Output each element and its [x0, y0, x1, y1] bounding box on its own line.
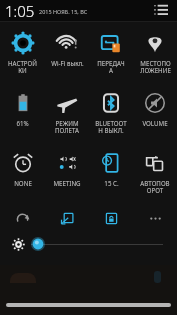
button[interactable]: Data transfer [89, 24, 133, 84]
button[interactable]: Auto rotate [133, 144, 177, 204]
staticText: Wi-Fi выкл. [51, 59, 84, 67]
button[interactable]: Location [133, 24, 177, 84]
staticText: MEETING [53, 179, 81, 187]
button[interactable]: Alarm [0, 144, 45, 204]
staticText: 15 С. [104, 179, 119, 187]
button[interactable]: More [133, 207, 177, 229]
button[interactable]: Volume [133, 84, 177, 144]
staticText: NONE [14, 179, 32, 187]
staticText: BLUETOOT Н ВЫКЛ. [95, 119, 127, 135]
staticText: 61% [16, 119, 29, 127]
button[interactable]: Rotate [0, 207, 45, 229]
button[interactable]: Screenshot [45, 207, 89, 229]
button[interactable]: Settings [0, 24, 45, 84]
staticText: VOLUME [142, 119, 168, 127]
staticText: 2015 НОЯБ. 15, ВС [39, 8, 88, 15]
button[interactable]: Notifications list [151, 1, 171, 21]
button[interactable]: Bluetooth [89, 84, 133, 144]
button[interactable]: Sound profile [45, 144, 89, 204]
staticText: 1:05 [5, 1, 35, 21]
button[interactable]: Battery [0, 84, 45, 144]
staticText: НАСТРОЙ КИ [8, 59, 37, 75]
staticText: МЕСТОПО ЛОЖЕНИЕ [140, 59, 171, 75]
staticText: РЕЖИМ ПОЛЕТА [55, 119, 79, 135]
button[interactable]: Wi-Fi [45, 24, 89, 84]
button[interactable]: Airplane mode [45, 84, 89, 144]
button[interactable]: Screen timeout [89, 144, 133, 204]
button[interactable]: Brightness [0, 233, 177, 255]
staticText: АВТОПОВ ОРОТ [140, 179, 170, 195]
staticText: ПЕРЕДАЧ А [97, 59, 125, 75]
button[interactable]: Screen lock [89, 207, 133, 229]
